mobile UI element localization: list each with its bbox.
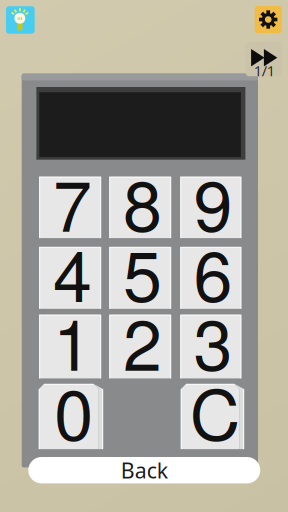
staticText: 1/1 [254,61,275,80]
button[interactable]: C [181,384,244,449]
button[interactable]: 6 [180,247,241,309]
button[interactable]: 5 [109,247,171,309]
staticText: 2 [123,290,162,391]
button[interactable]: 9 [180,177,241,238]
button[interactable]: 1 [39,315,101,378]
staticText: C [190,360,241,461]
button[interactable]: Back [28,457,260,483]
button[interactable]: 3 [180,315,241,378]
button[interactable]: Settings [255,6,282,33]
staticText: 0 [54,360,93,461]
staticText: 1 [53,290,92,391]
staticText: 8 [123,151,162,251]
staticText: 7 [53,151,92,251]
button[interactable]: 7 [39,177,101,238]
staticText: Back [121,456,168,484]
button[interactable]: 2 [109,315,171,378]
button[interactable]: 0 [39,384,103,449]
staticText: 4 [53,222,92,322]
button[interactable]: Hint [6,6,35,34]
button[interactable]: 8 [109,177,171,238]
staticText: 5 [123,222,162,322]
staticText: 3 [194,290,233,391]
staticText: 6 [194,222,233,322]
button[interactable]: 4 [39,247,101,309]
staticText: 9 [194,151,233,251]
button[interactable]: Next level [245,42,282,76]
